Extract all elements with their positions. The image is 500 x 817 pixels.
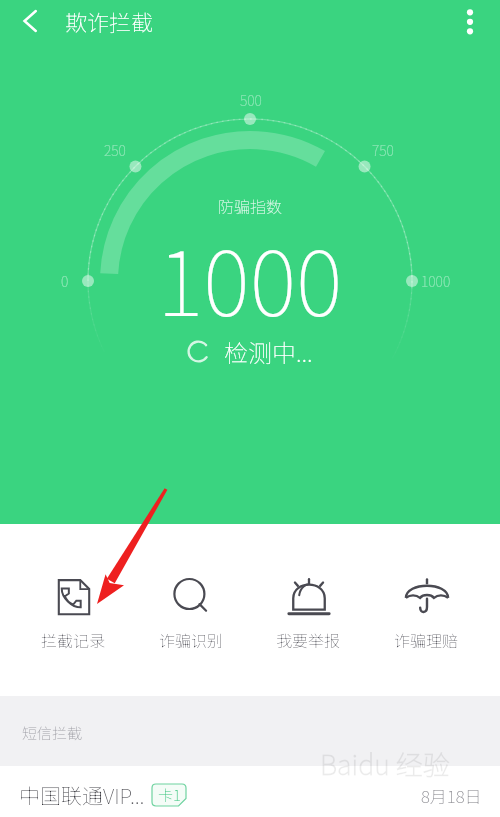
staticText: 防骗指数 (218, 194, 283, 217)
staticText: 检测中... (224, 334, 313, 369)
staticText: 诈骗识别 (159, 628, 224, 651)
staticText: 0 (61, 271, 69, 291)
staticText: Baidu 经验 (320, 744, 450, 783)
staticText: 1000 (421, 271, 451, 291)
staticText: 8月18日 (421, 783, 482, 808)
staticText: 中国联通VIP... (19, 780, 145, 810)
button[interactable]: 中国联通VIP... (0, 766, 500, 817)
button[interactable]: 拦截记录 (30, 575, 117, 651)
button[interactable]: Back (10, 0, 52, 42)
staticText: 欺诈拦截 (65, 5, 154, 37)
staticText: 我要举报 (276, 628, 341, 651)
staticText: 250 (104, 140, 126, 160)
button[interactable]: 诈骗识别 (148, 575, 235, 651)
staticText: 短信拦截 (22, 722, 83, 744)
staticText: 卡1 (158, 784, 181, 806)
button[interactable]: More options (449, 0, 491, 42)
staticText: 拦截记录 (41, 628, 106, 651)
staticText: 诈骗理赔 (394, 628, 459, 651)
staticText: 500 (240, 90, 262, 110)
staticText: 1000 (157, 213, 343, 342)
button[interactable]: 诈骗理赔 (383, 575, 470, 651)
button[interactable]: 我要举报 (265, 575, 352, 651)
staticText: 750 (372, 140, 394, 160)
